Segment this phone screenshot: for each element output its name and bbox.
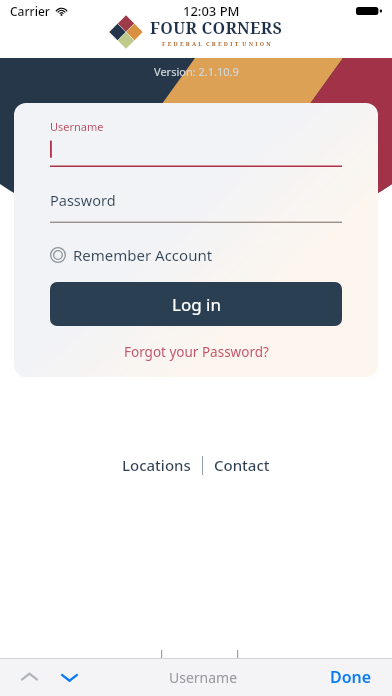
staticText: Username [169,668,238,687]
button[interactable]: Forgot your Password? [120,339,273,365]
button[interactable]: Locations [118,452,195,478]
button[interactable]: Username field [50,134,342,167]
staticText: Username [50,119,104,134]
staticText: Remember Account [73,245,213,265]
staticText: Password [50,190,116,210]
button[interactable]: Previous field [14,662,44,692]
staticText: Contact [214,455,270,475]
staticText: F E D E R A L C R E D I T U N I O N [162,40,271,47]
button[interactable]: Contact [210,452,274,478]
staticText: Version: 2.1.10.9 [154,64,239,79]
button[interactable]: Next field [54,662,84,692]
button[interactable]: Password field [50,210,342,223]
staticText: Log in [172,293,221,316]
button[interactable]: Log in [50,282,342,326]
button[interactable]: Done [324,662,378,692]
staticText: Locations [122,455,191,475]
staticText: 12:03 PM [183,2,240,20]
staticText: Done [330,666,372,688]
staticText: FOUR CORNERS [150,17,283,39]
button[interactable]: Remember Account [50,245,213,265]
staticText: Forgot your Password? [124,343,269,361]
staticText: Carrier [10,3,50,19]
